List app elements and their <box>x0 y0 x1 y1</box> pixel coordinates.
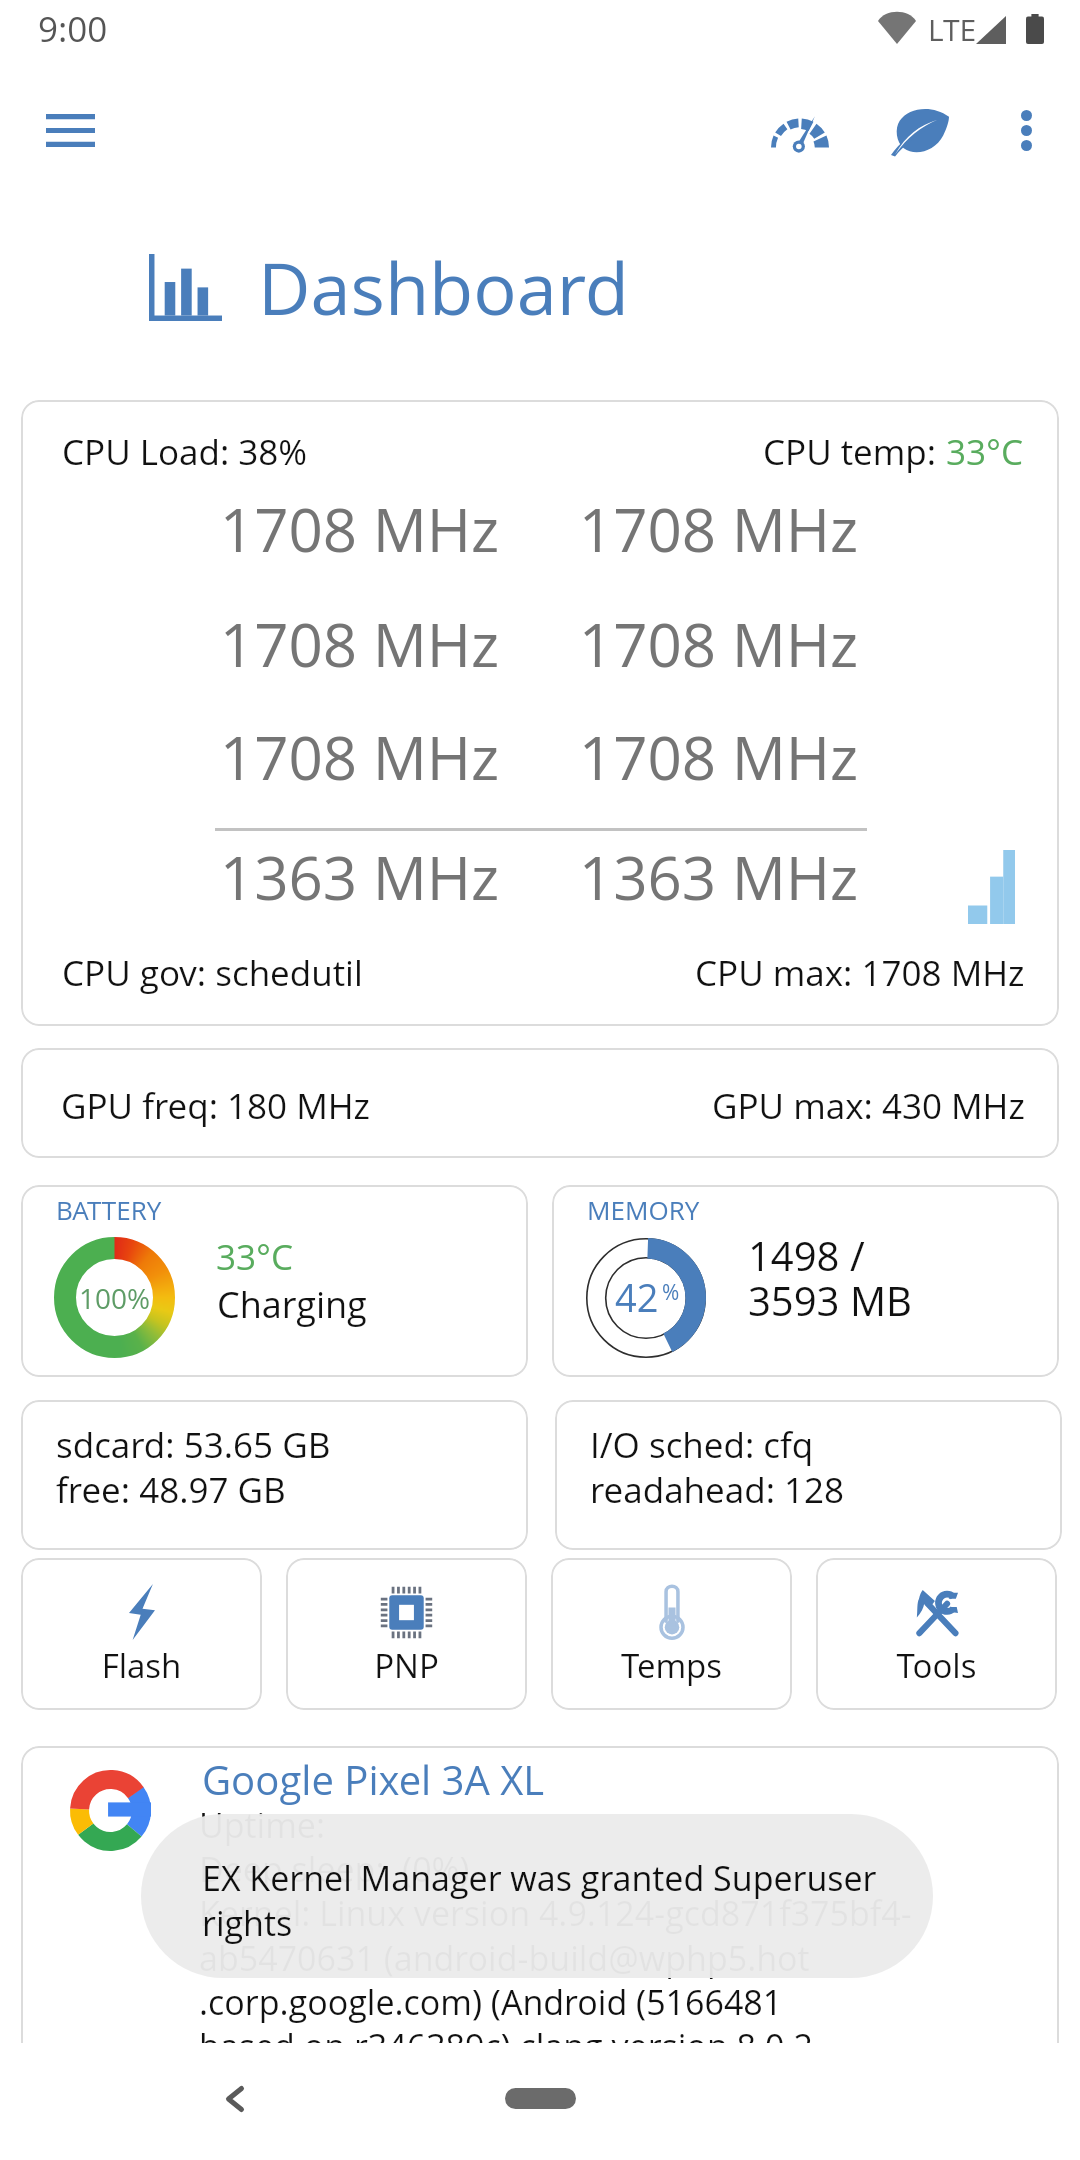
staticText: CPU temp: <box>763 428 946 476</box>
staticText: Tools <box>816 1643 1057 1688</box>
staticText: 3593 MB <box>748 1273 912 1327</box>
staticText: 1708 MHz <box>182 716 537 798</box>
staticText: Charging <box>217 1280 367 1329</box>
staticText: LTE <box>928 9 977 50</box>
button[interactable]: Flash <box>21 1558 262 1710</box>
staticText: 1708 MHz <box>541 603 896 685</box>
staticText: 1708 MHz <box>182 603 537 685</box>
button[interactable]: PNP <box>286 1558 527 1710</box>
staticText: free: 48.97 GB <box>56 1466 286 1514</box>
staticText: Google Pixel 3A XL <box>202 1752 545 1806</box>
staticText: I/O sched: cfq <box>590 1421 814 1469</box>
staticText: CPU max: 1708 MHz <box>695 949 1025 997</box>
staticText: sdcard: 53.65 GB <box>56 1421 331 1469</box>
staticText: GPU max: 430 MHz <box>712 1082 1025 1130</box>
staticText: % <box>662 1278 680 1307</box>
staticText: 33°C <box>216 1233 294 1281</box>
staticText: 9:00 <box>38 5 108 53</box>
button[interactable]: More options <box>978 82 1074 178</box>
staticText: readahead: 128 <box>590 1466 845 1514</box>
button[interactable]: Battery saver <box>872 82 968 178</box>
staticText: Dashboard <box>258 238 629 336</box>
staticText: 33°C <box>946 428 1024 476</box>
staticText: 1708 MHz <box>541 716 896 798</box>
staticText: 1363 MHz <box>182 836 537 918</box>
button[interactable]: Home <box>505 2088 576 2109</box>
button[interactable]: Tools <box>816 1558 1057 1710</box>
staticText: 100% <box>79 1279 151 1317</box>
staticText: Deep sleep: (0%) <box>199 1846 470 1892</box>
staticText: 1363 MHz <box>541 836 896 918</box>
button[interactable]: Menu <box>22 82 118 178</box>
staticText: 1498 / <box>748 1228 865 1282</box>
staticText: CPU gov: schedutil <box>62 949 363 997</box>
staticText: Flash <box>21 1643 262 1688</box>
staticText: PNP <box>286 1643 527 1688</box>
staticText: Uptime: <box>199 1802 325 1848</box>
staticText: Temps <box>551 1643 792 1688</box>
staticText: EX Kernel Manager was granted Superuser … <box>202 1855 892 1945</box>
staticText: 42 <box>615 1271 659 1323</box>
staticText: BATTERY <box>56 1192 162 1227</box>
button[interactable]: Performance profile <box>752 82 848 178</box>
button[interactable]: Back <box>195 2059 275 2139</box>
button[interactable]: Temps <box>551 1558 792 1710</box>
staticText: 1708 MHz <box>541 488 896 570</box>
staticText: Kernel: Linux version 4.9.124-gcd871f375… <box>199 1890 1029 2043</box>
staticText: GPU freq: 180 MHz <box>61 1082 370 1130</box>
staticText: MEMORY <box>587 1192 700 1227</box>
staticText: CPU Load: 38% <box>62 428 308 476</box>
staticText: 1708 MHz <box>182 488 537 570</box>
